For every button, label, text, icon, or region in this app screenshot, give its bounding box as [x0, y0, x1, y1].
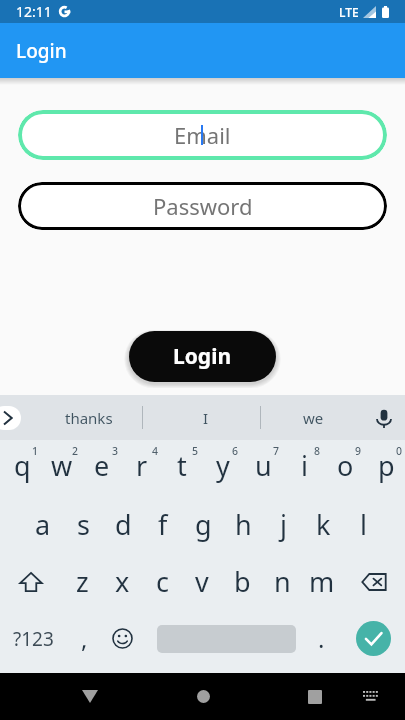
- button[interactable]: j: [263, 496, 303, 553]
- button[interactable]: d: [103, 496, 143, 553]
- button[interactable]: 0: [364, 440, 405, 496]
- staticText: w: [51, 447, 73, 484]
- staticText: x: [115, 563, 130, 600]
- staticText: z: [76, 563, 89, 600]
- button[interactable]: z: [62, 553, 102, 610]
- button[interactable]: thanks: [28, 395, 150, 440]
- staticText: l: [360, 506, 367, 543]
- staticText: d: [115, 506, 132, 543]
- button[interactable]: g: [183, 496, 223, 553]
- staticText: y: [216, 447, 230, 484]
- staticText: f: [158, 506, 168, 543]
- button[interactable]: Shift: [0, 553, 62, 610]
- staticText: Login: [173, 342, 232, 371]
- staticText: 5: [192, 444, 199, 458]
- button[interactable]: m: [302, 553, 342, 610]
- button[interactable]: b: [222, 553, 262, 610]
- staticText: we: [303, 408, 324, 428]
- button[interactable]: l: [343, 496, 383, 553]
- button[interactable]: Login: [129, 331, 276, 382]
- staticText: 8: [314, 444, 321, 458]
- staticText: Login: [16, 38, 67, 64]
- staticText: 2: [72, 444, 79, 458]
- staticText: j: [280, 506, 287, 543]
- staticText: Password: [153, 191, 253, 221]
- staticText: m: [309, 563, 335, 600]
- staticText: s: [77, 506, 90, 543]
- staticText: ?123: [13, 626, 54, 652]
- button[interactable]: 2: [40, 440, 80, 496]
- button[interactable]: v: [182, 553, 222, 610]
- staticText: n: [274, 563, 291, 600]
- staticText: I: [203, 408, 209, 428]
- button[interactable]: we: [262, 395, 364, 440]
- staticText: 3: [112, 444, 119, 458]
- button[interactable]: k: [303, 496, 343, 553]
- button[interactable]: I: [151, 395, 260, 440]
- staticText: ,: [81, 622, 88, 655]
- staticText: 0: [396, 444, 403, 458]
- staticText: e: [94, 447, 110, 484]
- staticText: q: [14, 447, 31, 484]
- button[interactable]: a: [23, 496, 63, 553]
- button[interactable]: x: [102, 553, 142, 610]
- button[interactable]: s: [63, 496, 103, 553]
- button[interactable]: 8: [282, 440, 323, 496]
- button[interactable]: f: [143, 496, 183, 553]
- staticText: 4: [152, 444, 159, 458]
- staticText: g: [195, 506, 212, 543]
- button[interactable]: 6: [200, 440, 241, 496]
- staticText: r: [136, 447, 148, 484]
- button[interactable]: Backspace: [342, 553, 405, 610]
- staticText: 7: [273, 444, 280, 458]
- button[interactable]: 7: [241, 440, 282, 496]
- staticText: 1: [32, 444, 39, 458]
- button[interactable]: n: [262, 553, 302, 610]
- staticText: p: [378, 447, 395, 484]
- button[interactable]: h: [223, 496, 263, 553]
- button[interactable]: Recent apps: [291, 673, 339, 720]
- staticText: b: [234, 563, 251, 600]
- button[interactable]: ?123: [0, 610, 64, 667]
- staticText: a: [35, 506, 51, 543]
- button[interactable]: 9: [323, 440, 364, 496]
- button[interactable]: Expand suggestions: [0, 406, 21, 430]
- button[interactable]: c: [142, 553, 182, 610]
- staticText: i: [301, 447, 308, 484]
- button[interactable]: 3: [80, 440, 120, 496]
- button[interactable]: Hide keyboard: [352, 673, 390, 720]
- staticText: LTE: [339, 4, 359, 20]
- button[interactable]: Email: [18, 110, 387, 160]
- button[interactable]: Enter: [341, 610, 405, 667]
- staticText: o: [337, 447, 354, 484]
- staticText: 12:11: [16, 2, 52, 21]
- button[interactable]: 5: [160, 440, 200, 496]
- staticText: .: [318, 622, 325, 655]
- staticText: v: [195, 563, 209, 600]
- button[interactable]: ,: [64, 610, 104, 667]
- staticText: u: [255, 447, 272, 484]
- button[interactable]: 1: [0, 440, 40, 496]
- staticText: thanks: [65, 408, 113, 428]
- button[interactable]: Emoji: [104, 610, 148, 667]
- staticText: t: [177, 447, 187, 484]
- staticText: 9: [355, 444, 362, 458]
- staticText: Email: [174, 120, 231, 150]
- button[interactable]: [148, 610, 301, 667]
- staticText: k: [316, 506, 331, 543]
- button[interactable]: Home: [179, 673, 227, 720]
- button[interactable]: Back: [66, 673, 114, 720]
- staticText: h: [235, 506, 252, 543]
- staticText: 6: [232, 444, 239, 458]
- button[interactable]: 4: [120, 440, 160, 496]
- staticText: c: [156, 563, 169, 600]
- button[interactable]: Voice input: [371, 405, 397, 431]
- button[interactable]: Password: [18, 182, 387, 230]
- button[interactable]: .: [301, 610, 341, 667]
